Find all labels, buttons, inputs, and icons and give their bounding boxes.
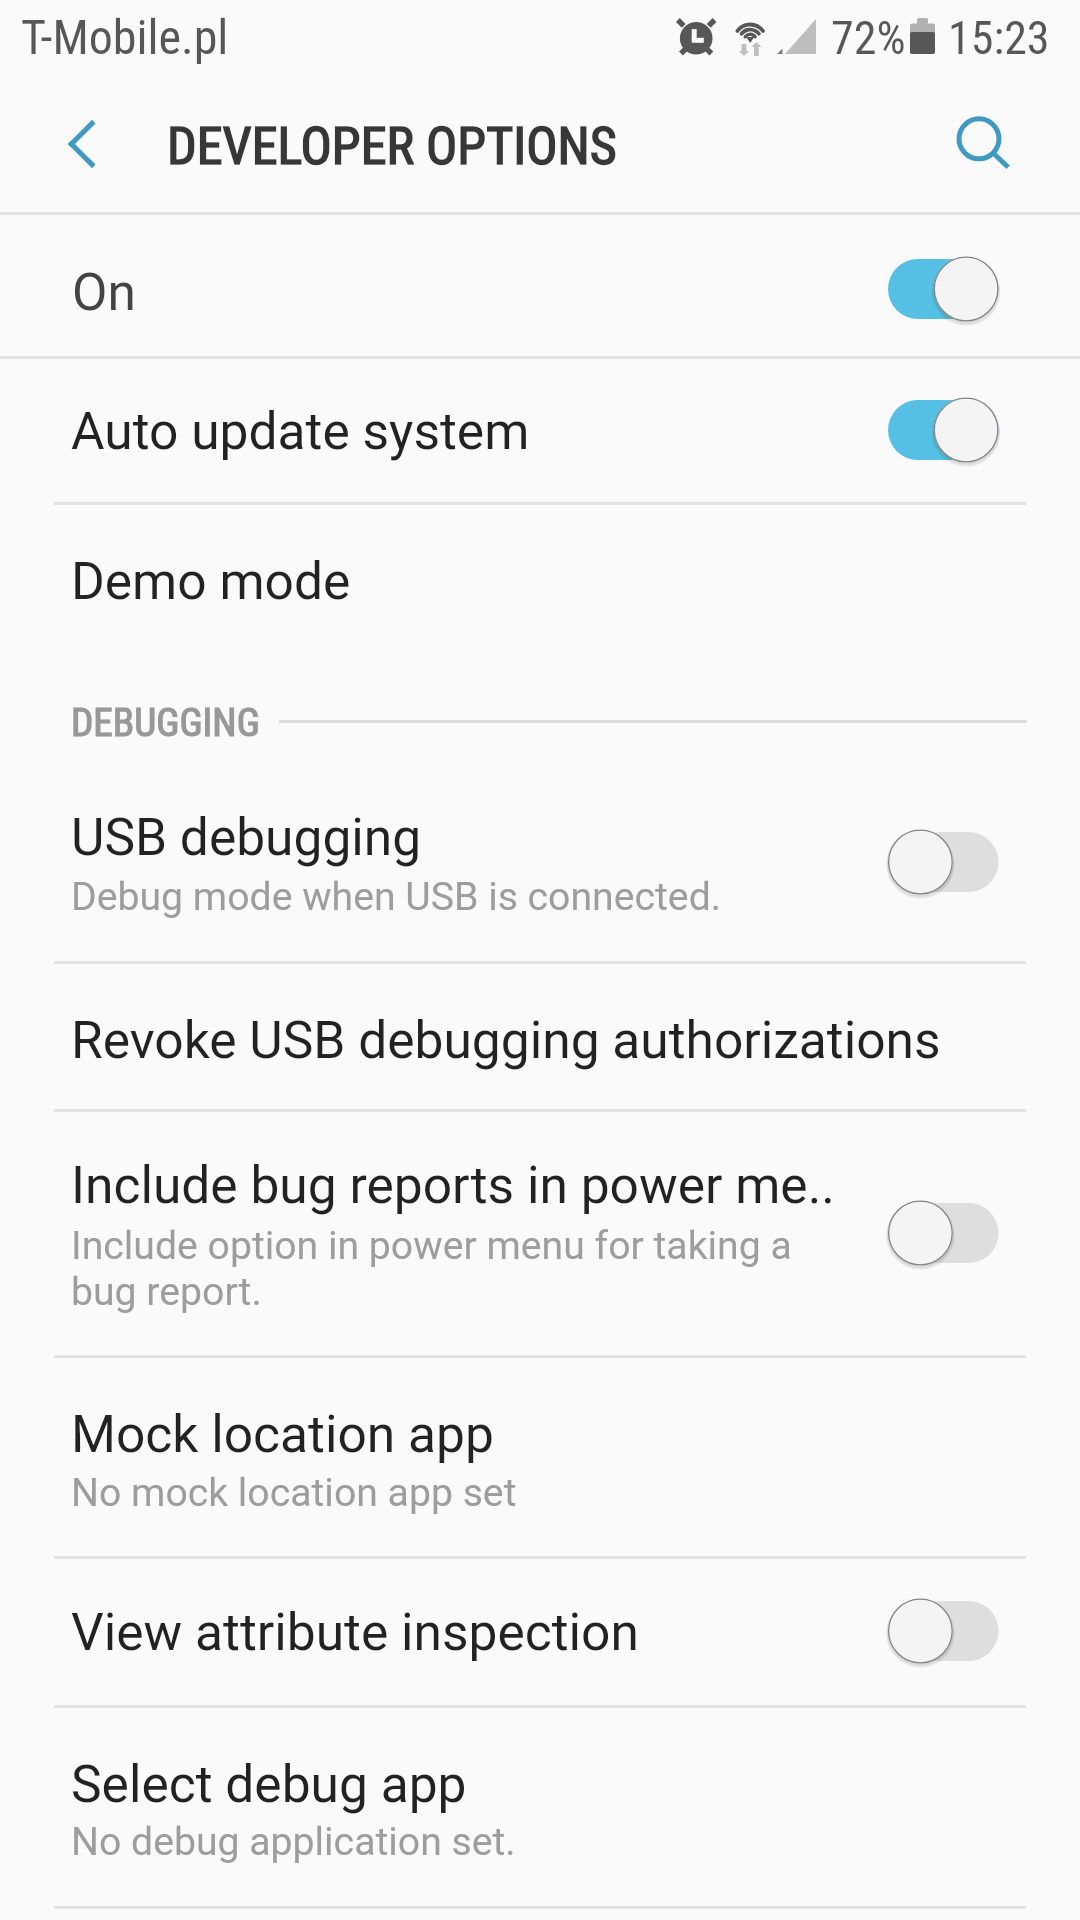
button[interactable]: View attribute inspection — [884, 1595, 1008, 1667]
staticText: No mock location app set — [71, 1470, 517, 1516]
staticText: No debug application set. — [71, 1819, 516, 1865]
button[interactable]: Auto update system — [0, 357, 1080, 503]
staticText: On — [72, 262, 136, 322]
staticText: 72% — [831, 11, 906, 65]
button[interactable]: Demo mode — [0, 503, 1080, 650]
staticText: Select debug app — [71, 1754, 467, 1814]
staticText: DEBUGGING — [71, 700, 260, 746]
button[interactable]: Select debug app — [0, 1706, 1080, 1907]
button[interactable]: Navigate up — [30, 96, 134, 192]
button[interactable]: Search — [930, 96, 1040, 192]
staticText: Debug mode when USB is connected. — [71, 874, 722, 920]
button[interactable]: Include bug reports in power menu — [0, 1110, 1080, 1356]
staticText: T-Mobile.pl — [21, 10, 229, 66]
button[interactable] — [160, 96, 630, 192]
button[interactable]: On — [884, 253, 1008, 325]
staticText: View attribute inspection — [71, 1602, 639, 1662]
staticText: bug report. — [71, 1269, 262, 1315]
staticText: Include bug reports in power me.. — [71, 1155, 835, 1215]
button[interactable]: Revoke USB debugging authorizations — [0, 962, 1080, 1110]
staticText: Include option in power menu for taking … — [71, 1223, 792, 1269]
staticText: DEVELOPER OPTIONS — [167, 116, 617, 177]
staticText: 15:23 — [948, 11, 1050, 65]
button[interactable]: Mock location app — [0, 1356, 1080, 1557]
staticText: Demo mode — [71, 551, 351, 611]
button[interactable]: USB debugging — [0, 775, 1080, 962]
staticText: Revoke USB debugging authorizations — [71, 1010, 941, 1070]
staticText: Auto update system — [71, 401, 530, 461]
staticText: USB debugging — [71, 807, 422, 867]
button[interactable]: USB debugging — [884, 826, 1008, 898]
staticText: Mock location app — [71, 1404, 494, 1464]
button[interactable]: Auto update system — [884, 394, 1008, 466]
button[interactable]: On — [0, 213, 1080, 357]
button[interactable]: Include bug reports in power menu — [884, 1197, 1008, 1269]
button[interactable]: View attribute inspection — [0, 1557, 1080, 1706]
